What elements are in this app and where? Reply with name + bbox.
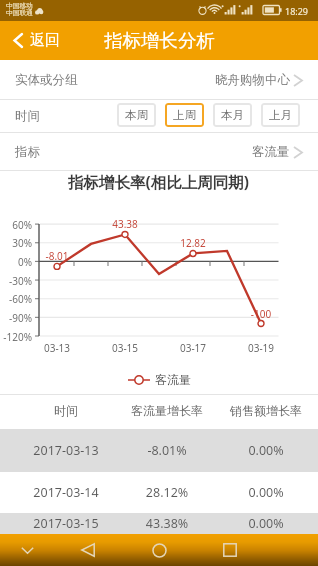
staticText: 2017-03-13 xyxy=(11,442,121,459)
staticText: -8.01% xyxy=(112,442,222,459)
staticText: 0.00% xyxy=(211,484,318,501)
staticText: 销售额增长率 xyxy=(211,403,318,418)
staticText: -90% xyxy=(0,311,32,325)
staticText: 中国联通 xyxy=(6,9,33,17)
staticText: 客流量 xyxy=(252,144,290,160)
staticText: 指标增长分析 xyxy=(104,29,215,52)
staticText: 上月 xyxy=(269,108,292,122)
button[interactable]: 返回 xyxy=(0,23,72,58)
staticText: 0% xyxy=(0,255,32,269)
staticText: -8.01 xyxy=(27,249,87,263)
staticText: 03-19 xyxy=(231,341,291,355)
staticText: 指标 xyxy=(15,144,40,160)
button[interactable]: 本月 xyxy=(213,103,252,127)
staticText: 返回 xyxy=(30,31,60,50)
staticText: -120% xyxy=(0,330,32,344)
button[interactable]: 2017-03-15 xyxy=(0,513,318,534)
staticText: 本周 xyxy=(125,108,148,122)
staticText: 客流量增长率 xyxy=(112,403,222,418)
staticText: 实体或分组 xyxy=(15,72,78,88)
staticText: -30% xyxy=(0,274,32,288)
staticText: 本月 xyxy=(221,108,244,122)
button[interactable]: 指标 xyxy=(0,132,318,171)
staticText: 43.38 xyxy=(95,217,155,231)
button[interactable]: 上月 xyxy=(261,103,300,127)
button[interactable]: 本周 xyxy=(117,103,156,127)
staticText: 晓舟购物中心 xyxy=(215,72,290,88)
button[interactable]: 时间 xyxy=(0,395,318,430)
staticText: 03-17 xyxy=(163,341,223,355)
button[interactable]: Back xyxy=(72,534,104,566)
button[interactable]: 上周 xyxy=(165,103,204,127)
button[interactable]: 实体或分组 xyxy=(0,60,318,99)
button[interactable]: Recent apps xyxy=(214,534,246,566)
staticText: 03-15 xyxy=(95,341,155,355)
button[interactable]: 2017-03-14 xyxy=(0,472,318,513)
staticText: 12.82 xyxy=(163,236,223,250)
staticText: 0.00% xyxy=(211,442,318,459)
staticText: 03-13 xyxy=(27,341,87,355)
staticText: 中国移动 xyxy=(6,2,33,10)
staticText: 上周 xyxy=(173,108,196,122)
button[interactable]: Home xyxy=(143,534,175,566)
staticText: 时间 xyxy=(15,108,40,124)
button[interactable]: Hide keyboard xyxy=(11,534,43,566)
staticText: 指标增长率(相比上周同期) xyxy=(68,171,250,191)
staticText: 2017-03-14 xyxy=(11,484,121,501)
staticText: 客流量 xyxy=(155,372,191,387)
button[interactable]: 2017-03-13 xyxy=(0,429,318,472)
staticText: 43.38% xyxy=(112,515,222,532)
staticText: 0.00% xyxy=(211,515,318,532)
staticText: 60% xyxy=(0,218,32,232)
staticText: 2017-03-15 xyxy=(11,515,121,532)
staticText: 30% xyxy=(0,236,32,250)
staticText: -100 xyxy=(231,307,291,321)
staticText: 18:29 xyxy=(285,5,309,17)
staticText: 时间 xyxy=(11,403,121,418)
staticText: -60% xyxy=(0,292,32,306)
staticText: 28.12% xyxy=(112,484,222,501)
